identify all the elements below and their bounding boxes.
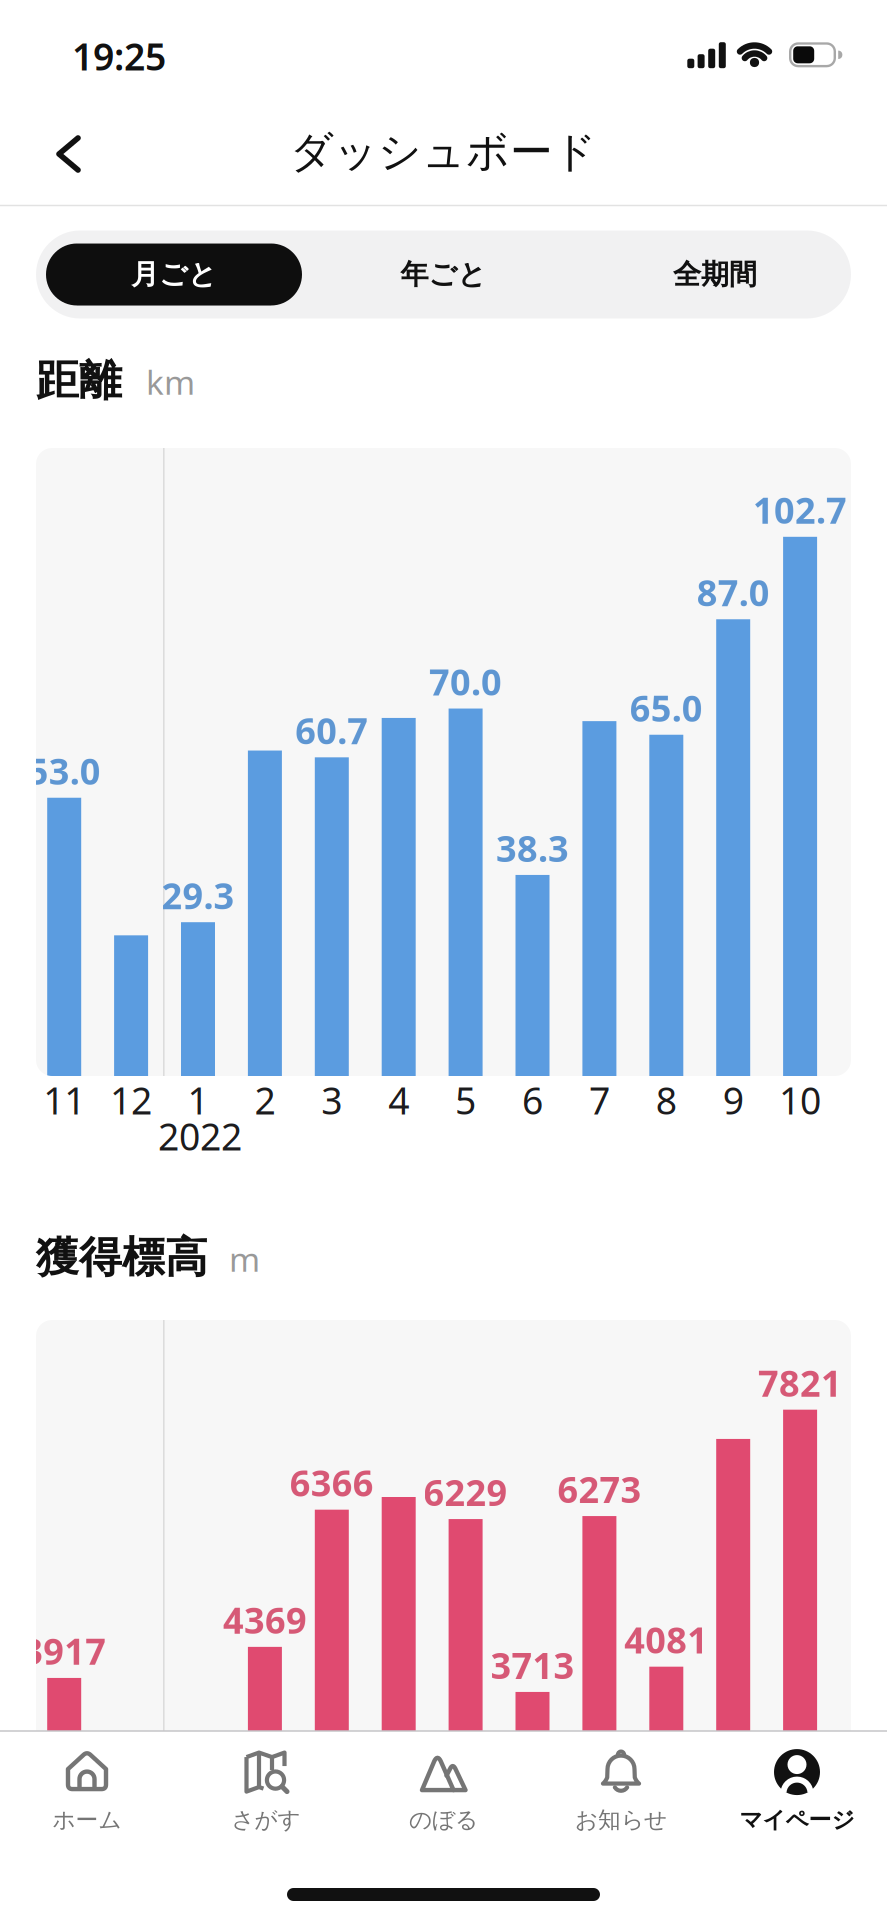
staticText: 53.0 <box>28 747 101 795</box>
button[interactable] <box>36 230 851 318</box>
staticText: 1 <box>187 1075 208 1125</box>
staticText: 全期間 <box>673 257 757 292</box>
staticText: 6229 <box>424 1468 508 1516</box>
staticText: さがす <box>231 1806 300 1834</box>
staticText: 2 <box>254 1075 275 1125</box>
button[interactable]: Back <box>48 134 88 174</box>
staticText: 87.0 <box>697 568 770 616</box>
staticText: 6273 <box>557 1465 641 1513</box>
staticText: 2022 <box>158 1111 242 1161</box>
staticText: km <box>146 360 195 404</box>
staticText: 年ごと <box>400 257 486 292</box>
staticText: 8 <box>656 1075 677 1125</box>
staticText: 11 <box>43 1075 85 1125</box>
staticText: 65.0 <box>630 684 703 732</box>
button[interactable]: お知らせ <box>541 1749 701 1832</box>
staticText: のぼる <box>409 1806 478 1834</box>
button[interactable]: 年ごと <box>343 234 543 314</box>
staticText: 7821 <box>758 1359 842 1407</box>
staticText: 3 <box>321 1075 342 1125</box>
staticText: 102.7 <box>753 486 847 534</box>
button[interactable]: さがす <box>186 1749 346 1832</box>
staticText: 4 <box>388 1075 409 1125</box>
staticText: 60.7 <box>295 706 368 754</box>
staticText: ホーム <box>52 1806 121 1834</box>
staticText: 70.0 <box>429 658 502 705</box>
staticText: 6366 <box>290 1459 374 1507</box>
staticText: 獲得標高 <box>36 1231 208 1284</box>
staticText: 29.3 <box>161 871 234 919</box>
staticText: お知らせ <box>575 1806 667 1834</box>
staticText: ダッシュボード <box>290 126 597 178</box>
staticText: 距離 <box>36 354 122 407</box>
staticText: 3917 <box>22 1627 106 1675</box>
staticText: 4369 <box>223 1596 307 1644</box>
staticText: 12 <box>110 1075 152 1125</box>
staticText: マイページ <box>739 1806 854 1834</box>
staticText: 4081 <box>624 1616 708 1663</box>
staticText: 7 <box>589 1075 610 1125</box>
staticText: 6 <box>522 1075 543 1125</box>
staticText: 19:25 <box>72 31 166 81</box>
staticText: 3713 <box>490 1641 574 1689</box>
button[interactable]: 全期間 <box>615 234 815 314</box>
staticText: 9 <box>723 1075 744 1125</box>
button[interactable]: マイページ <box>717 1749 877 1832</box>
button[interactable]: ホーム <box>7 1749 167 1832</box>
button[interactable]: のぼる <box>363 1749 523 1832</box>
staticText: m <box>229 1237 260 1281</box>
staticText: 10 <box>779 1075 821 1125</box>
staticText: 月ごと <box>131 257 217 292</box>
staticText: 38.3 <box>496 824 569 872</box>
staticText: 5 <box>455 1075 476 1125</box>
button[interactable]: 月ごと <box>46 243 302 305</box>
